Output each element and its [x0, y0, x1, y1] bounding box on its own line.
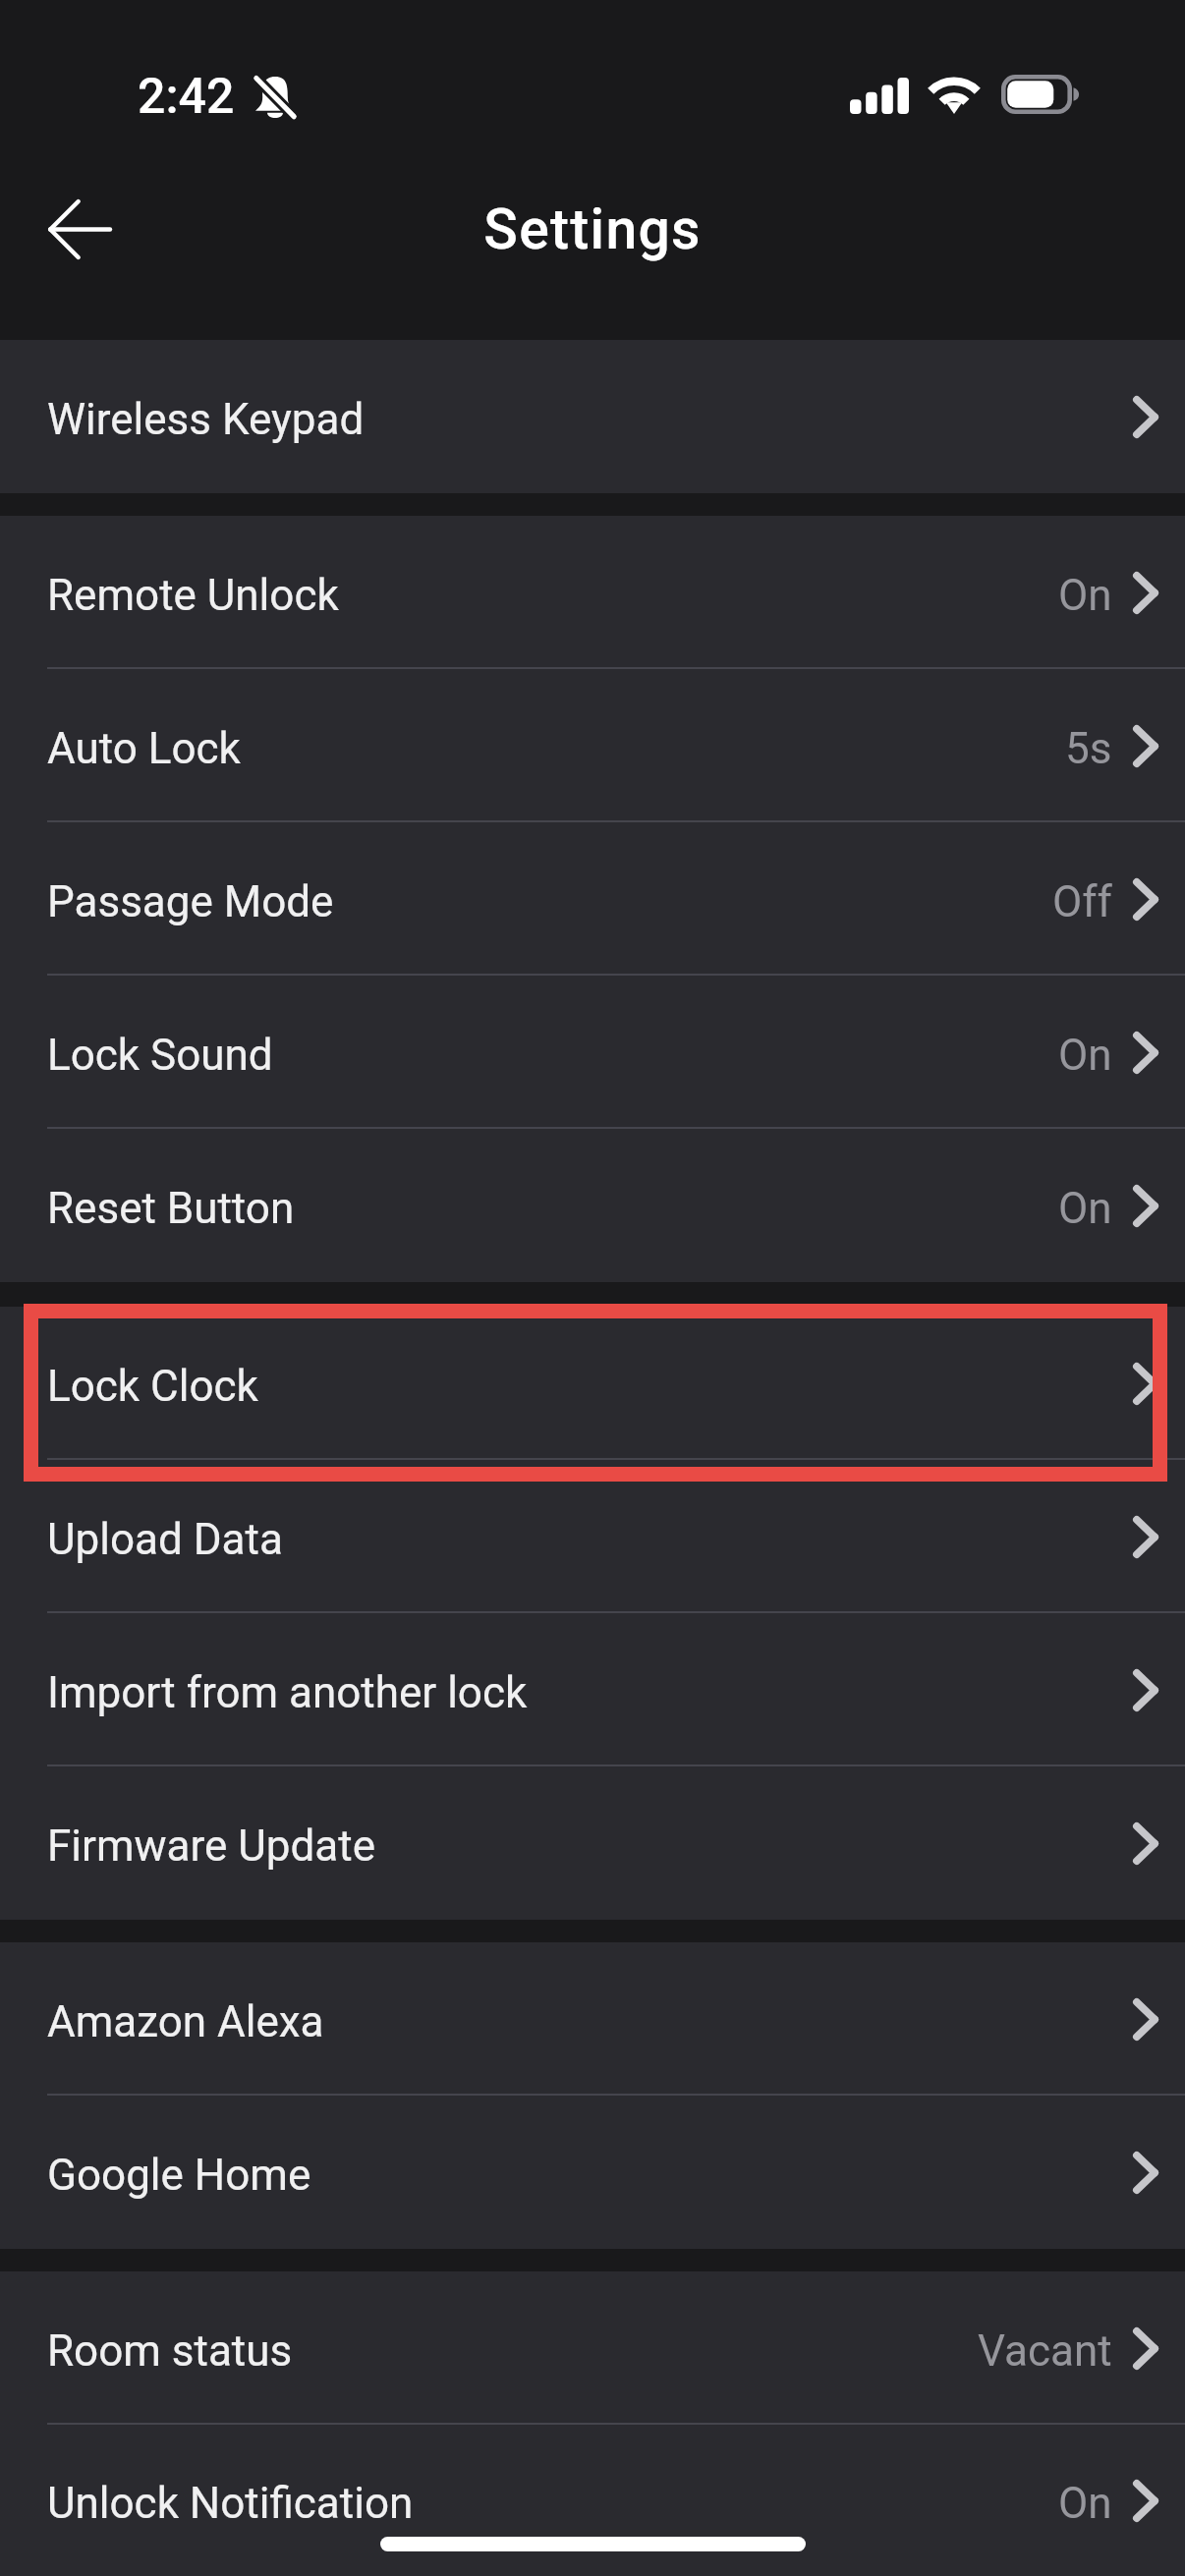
button[interactable]: Amazon Alexa: [0, 1942, 1185, 2096]
button[interactable]: Import from another lock: [0, 1613, 1185, 1766]
staticText: Passage Mode: [47, 876, 334, 927]
staticText: On: [1058, 570, 1112, 621]
staticText: Google Home: [47, 2150, 311, 2201]
staticText: Import from another lock: [47, 1667, 528, 1718]
staticText: Vacant: [978, 2325, 1112, 2377]
staticText: Remote Unlock: [47, 570, 339, 621]
staticText: Firmware Update: [47, 1820, 375, 1872]
button[interactable]: Lock Sound: [0, 976, 1185, 1129]
staticText: Lock Sound: [47, 1030, 273, 1081]
staticText: Reset Button: [47, 1183, 295, 1234]
staticText: Lock Clock: [47, 1361, 258, 1412]
button[interactable]: Passage Mode: [0, 822, 1185, 976]
button[interactable]: Firmware Update: [0, 1766, 1185, 1920]
button[interactable]: Back: [20, 170, 138, 288]
staticText: Auto Lock: [47, 723, 241, 774]
staticText: Off: [1052, 876, 1112, 927]
staticText: On: [1058, 1183, 1112, 1234]
staticText: 5s: [1065, 723, 1112, 774]
button[interactable]: Auto Lock: [0, 669, 1185, 822]
button[interactable]: Lock Clock: [0, 1307, 1185, 1460]
button[interactable]: Google Home: [0, 2096, 1185, 2249]
staticText: On: [1058, 2478, 1112, 2529]
staticText: Room status: [47, 2325, 293, 2377]
staticText: 2:42: [138, 68, 235, 126]
button[interactable]: Unlock Notification: [0, 2425, 1185, 2576]
staticText: On: [1058, 1030, 1112, 1081]
staticText: Unlock Notification: [47, 2478, 414, 2529]
button[interactable]: Upload Data: [0, 1460, 1185, 1613]
staticText: Settings: [483, 196, 702, 262]
button[interactable]: Wireless Keypad: [0, 340, 1185, 493]
staticText: Wireless Keypad: [47, 394, 365, 445]
button[interactable]: Room status: [0, 2271, 1185, 2425]
button[interactable]: Reset Button: [0, 1129, 1185, 1282]
staticText: Upload Data: [47, 1514, 283, 1565]
button[interactable]: Remote Unlock: [0, 516, 1185, 669]
staticText: Amazon Alexa: [47, 1996, 324, 2047]
